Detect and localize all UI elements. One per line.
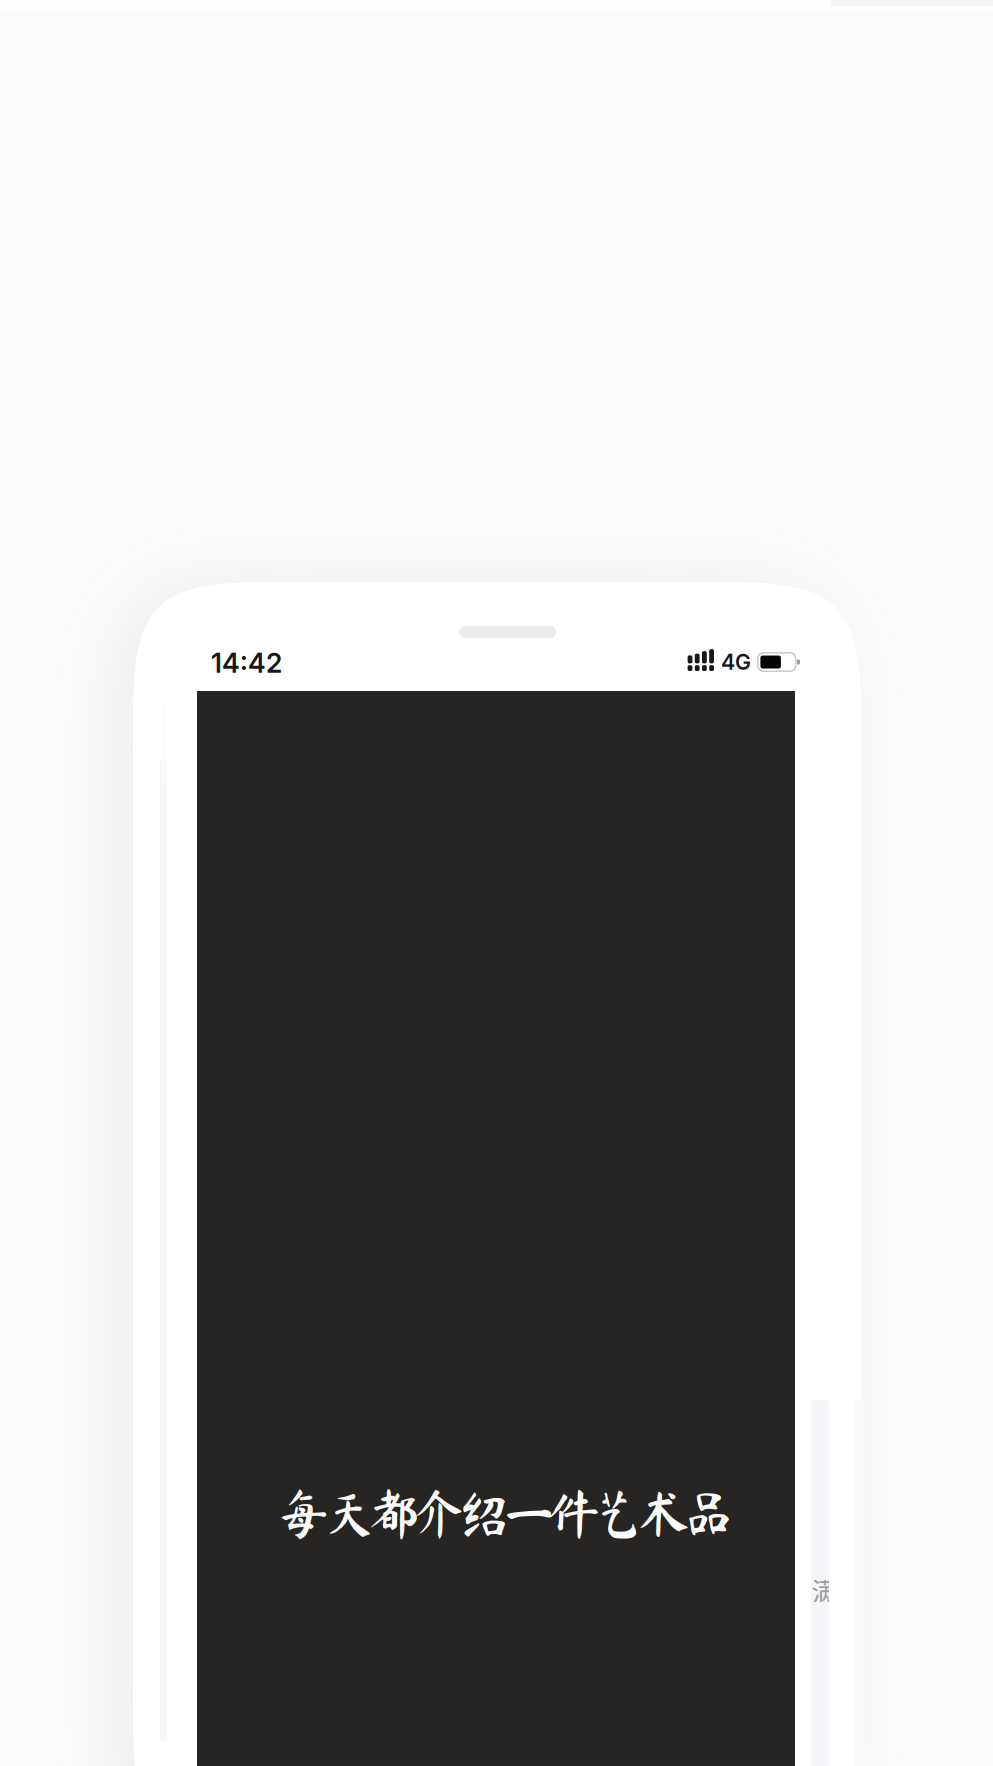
button[interactable]: 每天都介绍一件艺术品 [197, 691, 795, 1766]
staticText: 4G [721, 649, 751, 675]
staticText: 每天都介绍一件艺术品 [278, 1487, 735, 1539]
staticText: 满 [811, 1571, 839, 1611]
staticText: 14:42 [211, 647, 282, 679]
